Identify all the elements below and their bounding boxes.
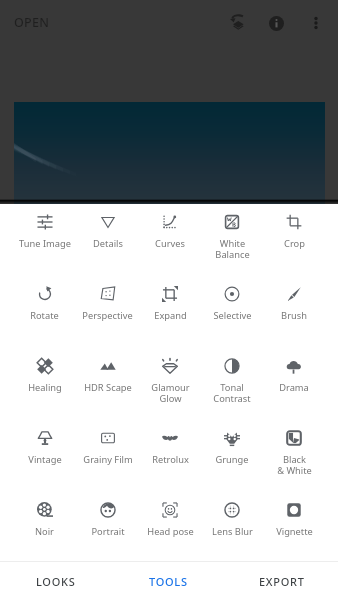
button[interactable]: Portrait xyxy=(76,492,139,561)
staticText: Portrait xyxy=(91,525,125,538)
button[interactable]: Retrolux xyxy=(139,420,201,492)
staticText: EXPORT xyxy=(259,574,305,589)
button[interactable]: Lens Blur xyxy=(201,492,263,561)
staticText: Details xyxy=(93,237,123,250)
button[interactable]: Expand xyxy=(139,276,201,348)
staticText: Vintage xyxy=(28,453,62,466)
button[interactable]: Perspective xyxy=(76,276,139,348)
staticText: Expand xyxy=(154,309,187,322)
button[interactable]: Vignette xyxy=(263,492,325,561)
staticText: Lens Blur xyxy=(212,525,253,538)
staticText: Grunge xyxy=(215,453,249,466)
staticText: Black & White xyxy=(277,453,312,477)
staticText: White Balance xyxy=(215,237,250,261)
staticText: Retrolux xyxy=(152,453,189,466)
staticText: LOOKS xyxy=(36,574,76,589)
button[interactable]: Tune Image xyxy=(13,204,76,276)
button[interactable]: Glamour Glow xyxy=(139,348,201,420)
staticText: Drama xyxy=(279,381,309,394)
button[interactable]: Drama xyxy=(263,348,325,420)
button[interactable]: Noir xyxy=(13,492,76,561)
button[interactable]: Tonal Contrast xyxy=(201,348,263,420)
button[interactable]: Healing xyxy=(13,348,76,420)
staticText: Grainy Film xyxy=(83,453,133,466)
staticText: Glamour Glow xyxy=(151,381,190,405)
button[interactable]: Rotate xyxy=(13,276,76,348)
button[interactable]: Grainy Film xyxy=(76,420,139,492)
staticText: Crop xyxy=(284,237,305,250)
button[interactable]: Crop xyxy=(263,204,325,276)
staticText: Head pose xyxy=(147,525,194,538)
button[interactable]: TOOLS xyxy=(112,562,225,600)
staticText: TOOLS xyxy=(149,574,188,589)
staticText: Vignette xyxy=(276,525,313,538)
staticText: Selective xyxy=(213,309,252,322)
button[interactable]: Black & White xyxy=(263,420,325,492)
button[interactable]: Vintage xyxy=(13,420,76,492)
button[interactable]: White Balance xyxy=(201,204,263,276)
button[interactable]: Brush xyxy=(263,276,325,348)
staticText: Noir xyxy=(35,525,54,538)
staticText: Perspective xyxy=(82,309,133,322)
staticText: Tonal Contrast xyxy=(213,381,251,405)
button[interactable]: Details xyxy=(76,204,139,276)
staticText: OPEN xyxy=(14,14,50,31)
button[interactable]: Head pose xyxy=(139,492,201,561)
button[interactable]: More options xyxy=(300,4,338,42)
button[interactable]: HDR Scape xyxy=(76,348,139,420)
staticText: Brush xyxy=(281,309,307,322)
button[interactable]: Curves xyxy=(139,204,201,276)
button[interactable]: Info xyxy=(260,4,300,42)
staticText: Healing xyxy=(28,381,62,394)
button[interactable]: Undo stack xyxy=(218,4,260,42)
staticText: Rotate xyxy=(30,309,59,322)
button[interactable]: OPEN xyxy=(8,8,56,37)
button[interactable]: EXPORT xyxy=(225,562,338,600)
button[interactable]: Grunge xyxy=(201,420,263,492)
staticText: Curves xyxy=(155,237,185,250)
staticText: Tune Image xyxy=(19,237,71,250)
button[interactable]: LOOKS xyxy=(0,562,112,600)
button[interactable]: Selective xyxy=(201,276,263,348)
staticText: HDR Scape xyxy=(84,381,132,394)
